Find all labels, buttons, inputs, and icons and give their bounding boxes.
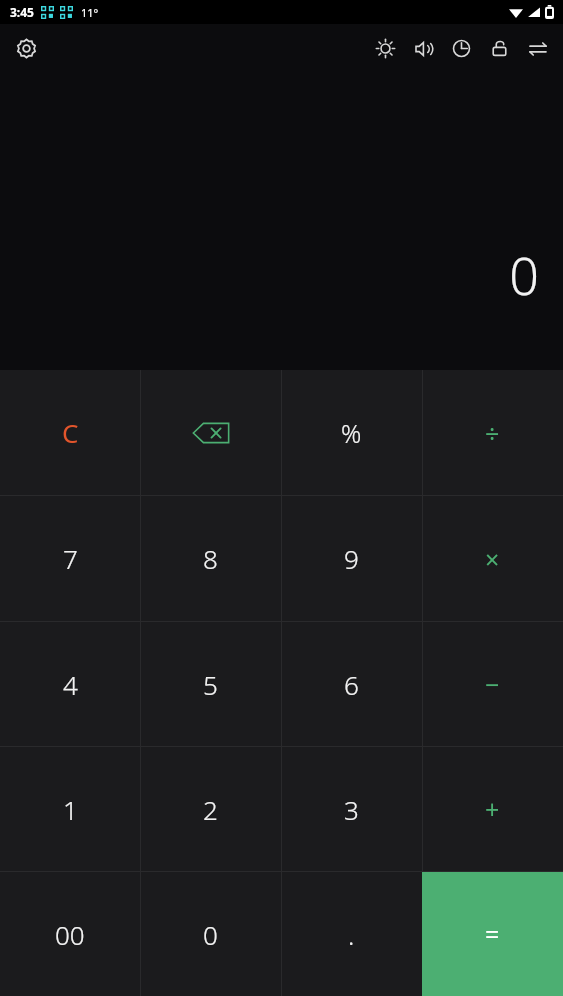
button[interactable]: 9 — [281, 496, 422, 621]
staticText: . — [348, 917, 355, 952]
staticText: − — [485, 667, 500, 701]
button[interactable]: − — [422, 622, 563, 746]
button[interactable]: 2 — [140, 747, 281, 871]
button[interactable]: ÷ — [422, 370, 563, 495]
button[interactable]: % — [281, 370, 422, 495]
staticText: + — [485, 792, 500, 826]
staticText: 00 — [55, 917, 85, 952]
staticText: 9 — [344, 541, 359, 576]
staticText: 1 — [63, 792, 78, 827]
button[interactable]: 6 — [281, 622, 422, 746]
button[interactable]: 5 — [140, 622, 281, 746]
button[interactable]: C — [0, 370, 140, 495]
button[interactable]: 4 — [0, 622, 140, 746]
button[interactable]: History — [450, 37, 473, 60]
staticText: × — [485, 542, 500, 576]
button[interactable]: Brightness — [374, 37, 397, 60]
button[interactable]: Lock — [488, 37, 511, 60]
button[interactable]: 1 — [0, 747, 140, 871]
button[interactable]: 3 — [281, 747, 422, 871]
staticText: 0 — [509, 239, 539, 310]
staticText: 7 — [63, 541, 78, 576]
staticText: = — [485, 917, 500, 951]
staticText: 11° — [81, 5, 99, 20]
button[interactable]: 00 — [0, 872, 140, 996]
staticText: 8 — [203, 541, 218, 576]
button[interactable]: Backspace — [140, 370, 281, 495]
staticText: 0 — [203, 917, 218, 952]
staticText: % — [341, 416, 362, 450]
staticText: ÷ — [485, 416, 500, 450]
button[interactable]: Convert — [526, 37, 549, 60]
button[interactable]: 0 — [140, 872, 281, 996]
button[interactable]: 7 — [0, 496, 140, 621]
staticText: 6 — [344, 667, 359, 702]
button[interactable]: . — [281, 872, 422, 996]
staticText: 3 — [344, 792, 359, 827]
button[interactable]: = — [422, 872, 563, 996]
button[interactable]: 8 — [140, 496, 281, 621]
staticText: 4 — [63, 667, 78, 702]
staticText: 3:45 — [10, 4, 34, 20]
button[interactable]: × — [422, 496, 563, 621]
button[interactable]: Settings — [10, 32, 42, 64]
staticText: C — [62, 415, 79, 450]
staticText: 5 — [203, 667, 218, 702]
staticText: 2 — [203, 792, 218, 827]
button[interactable]: Sound — [412, 37, 435, 60]
button[interactable]: + — [422, 747, 563, 871]
